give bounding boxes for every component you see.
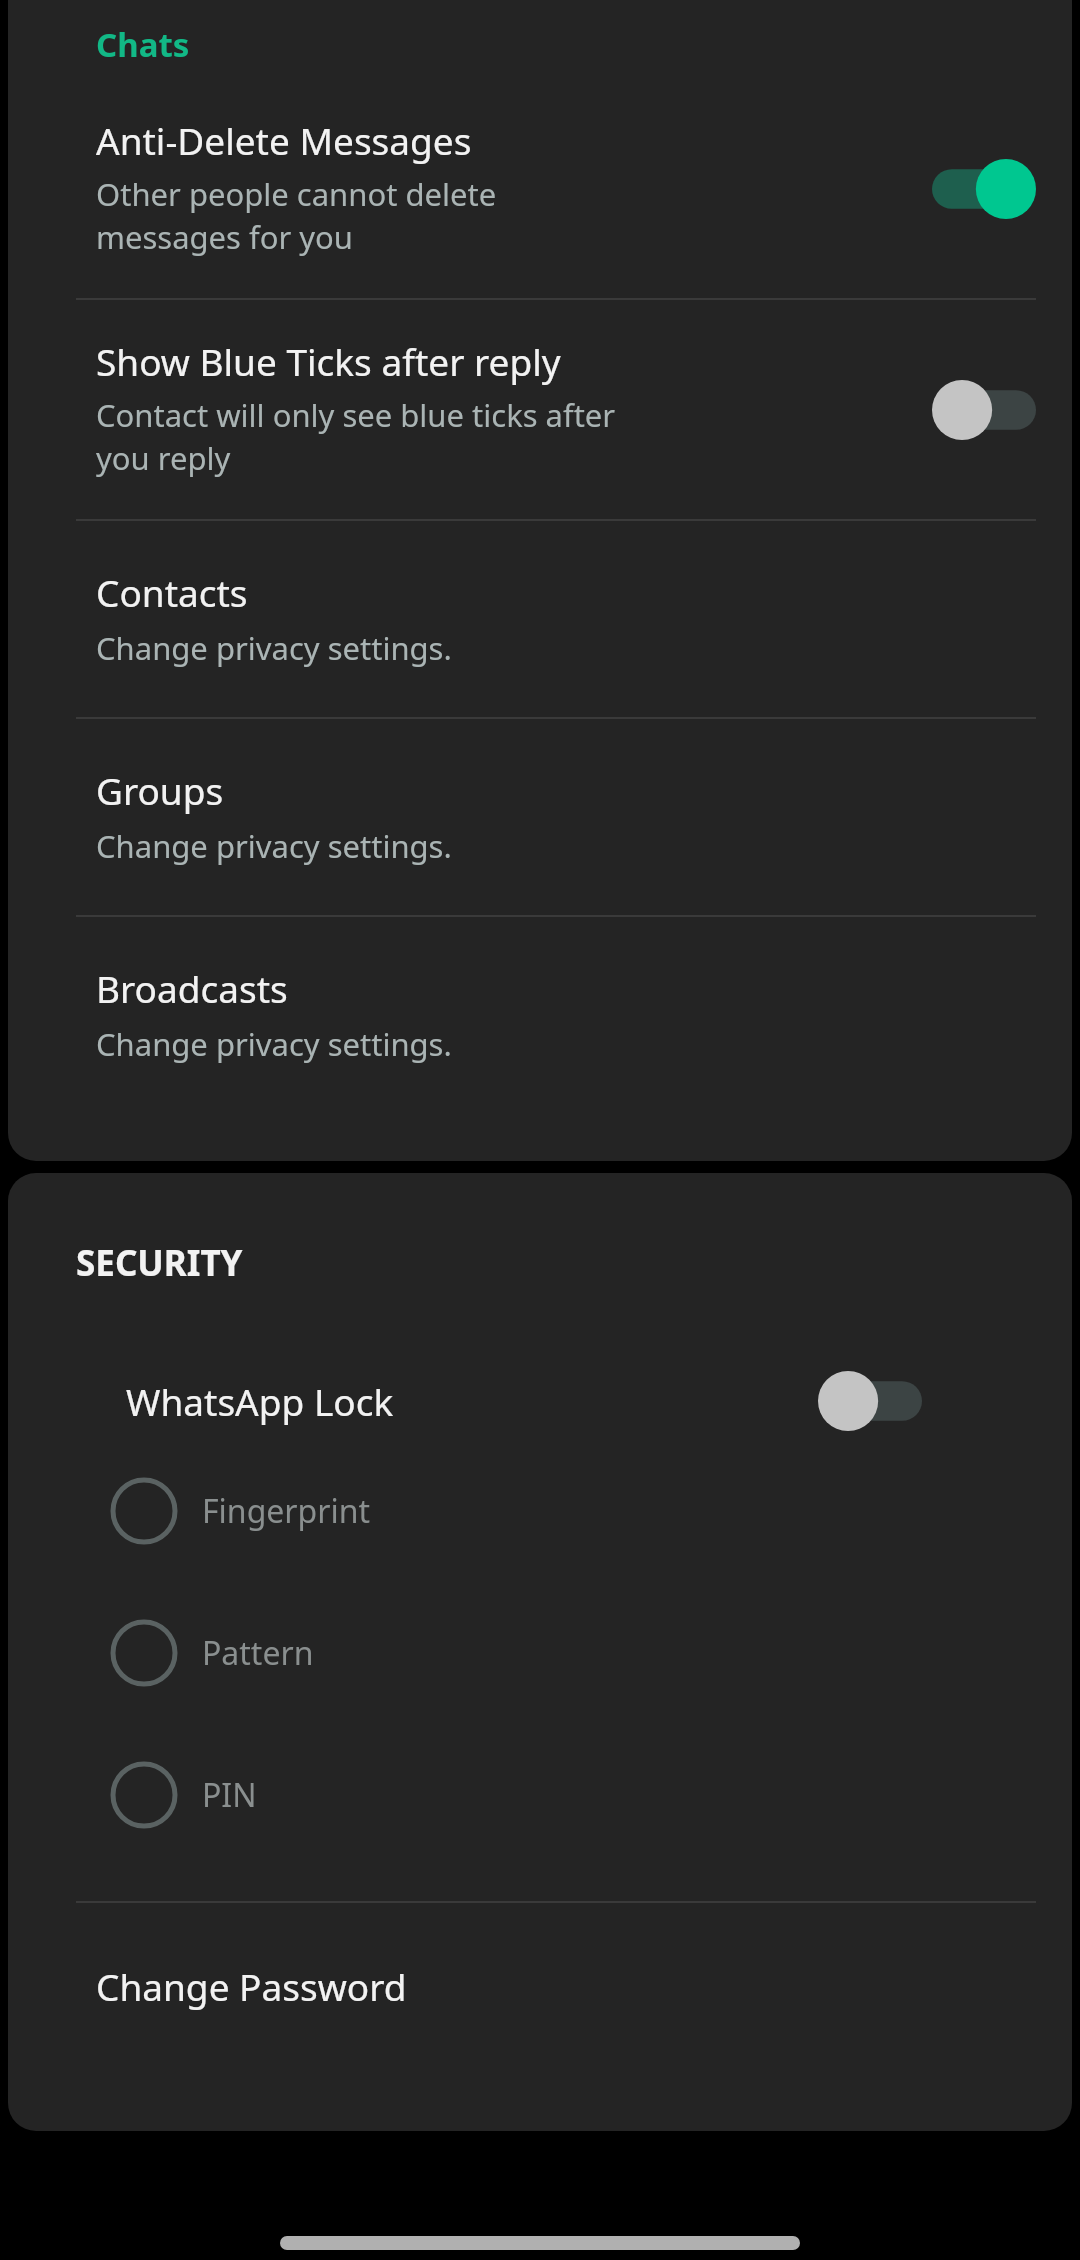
button[interactable]: Toggle off (818, 1369, 922, 1433)
button[interactable]: PIN (8, 1759, 1072, 1831)
staticText: Groups (96, 765, 224, 815)
staticText: Change privacy settings. (96, 1023, 452, 1065)
staticText: Contact will only see blue ticks after y… (96, 394, 616, 479)
staticText: PIN (202, 1773, 257, 1817)
button[interactable]: Change Password (8, 1961, 407, 2011)
staticText: Broadcasts (96, 963, 288, 1013)
staticText: Pattern (202, 1631, 314, 1675)
button[interactable]: WhatsApp Lock (8, 1369, 1072, 1433)
staticText: SECURITY (76, 1239, 243, 1287)
staticText: Fingerprint (202, 1489, 371, 1533)
staticText: WhatsApp Lock (126, 1376, 818, 1426)
button[interactable]: Groups (8, 765, 1072, 867)
staticText: Other people cannot delete messages for … (96, 173, 497, 258)
button[interactable]: Anti-Delete Messages (8, 107, 1072, 276)
staticText: Change privacy settings. (96, 825, 452, 867)
staticText: Chats (96, 22, 190, 67)
staticText: Contacts (96, 567, 248, 617)
button[interactable]: Contacts (8, 567, 1072, 669)
staticText: Anti-Delete Messages (96, 115, 472, 165)
button[interactable]: Toggle on (932, 157, 1036, 221)
button[interactable]: Broadcasts (8, 963, 1072, 1065)
button[interactable]: Show Blue Ticks after reply (8, 336, 1072, 497)
button[interactable]: Fingerprint (8, 1475, 1072, 1547)
button[interactable]: Toggle off (932, 378, 1036, 442)
staticText: Show Blue Ticks after reply (96, 336, 561, 386)
staticText: Change privacy settings. (96, 627, 452, 669)
button[interactable]: Pattern (8, 1617, 1072, 1689)
